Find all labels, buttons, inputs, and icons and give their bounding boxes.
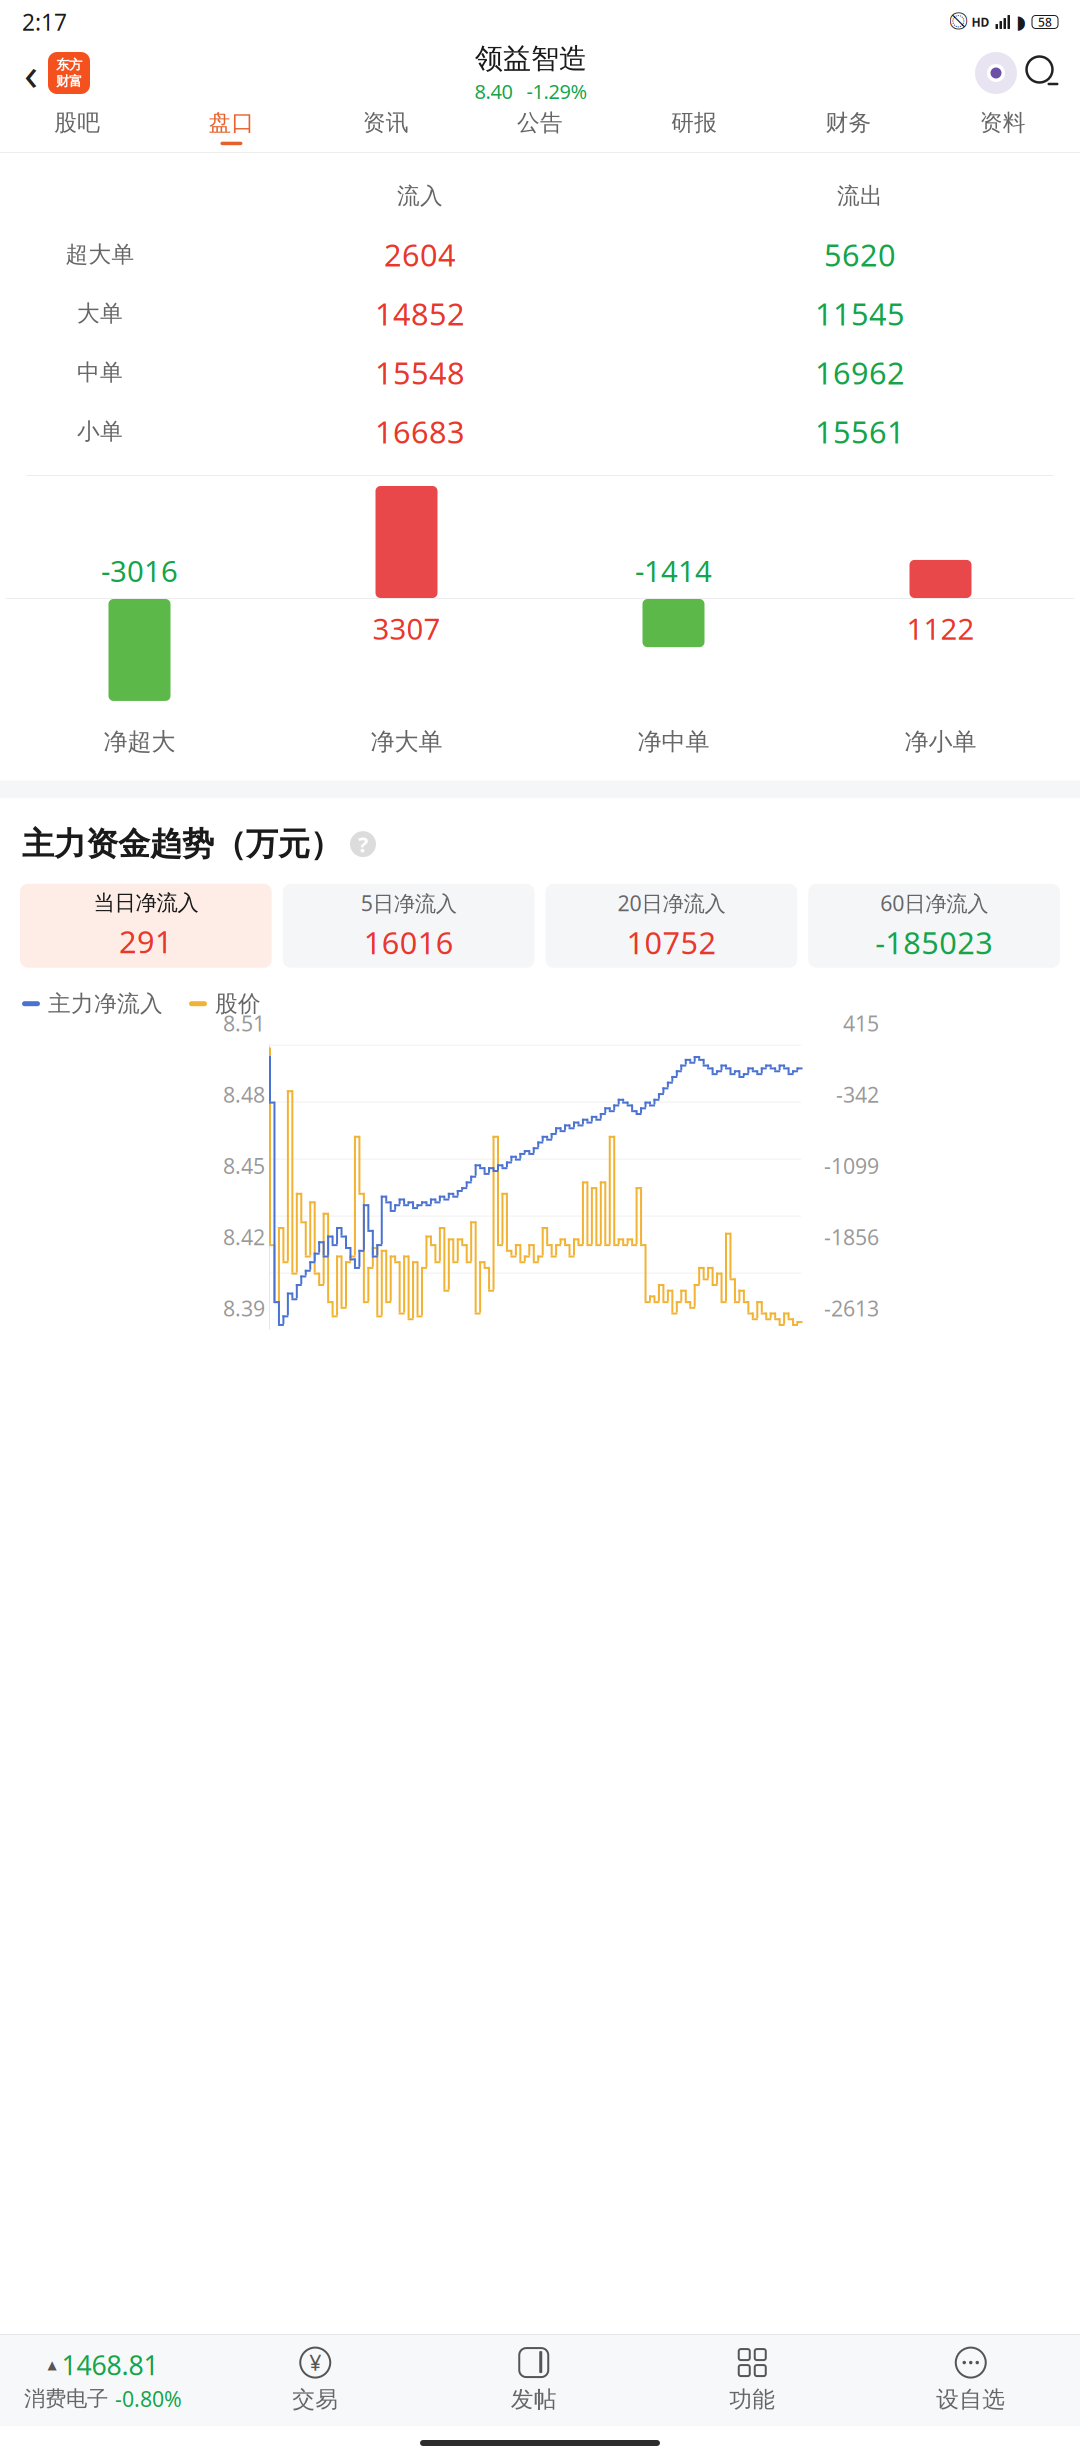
staticText: 交易 bbox=[292, 2386, 338, 2413]
button[interactable]: Search bbox=[1020, 50, 1066, 96]
staticText: -342 bbox=[836, 1080, 879, 1108]
button[interactable]: 东方财富 bbox=[48, 52, 90, 94]
staticText: 2:17 bbox=[22, 7, 67, 37]
staticText: ◗ bbox=[1016, 11, 1026, 33]
button[interactable]: ▲ bbox=[0, 2334, 206, 2426]
staticText: 14852 bbox=[375, 293, 465, 334]
staticText: -0.80% bbox=[115, 2384, 182, 2413]
staticText: 净超大 bbox=[103, 727, 175, 756]
staticText: 公告 bbox=[517, 109, 563, 137]
staticText: 16016 bbox=[364, 922, 454, 963]
staticText: 流入 bbox=[397, 182, 443, 210]
staticText: 415 bbox=[843, 1009, 879, 1037]
staticText: ▲ bbox=[47, 2358, 56, 2372]
staticText: 小单 bbox=[77, 418, 123, 445]
staticText: 20日净流入 bbox=[617, 889, 725, 917]
staticText: 流出 bbox=[837, 182, 883, 210]
staticText: 10752 bbox=[626, 922, 716, 963]
button[interactable]: 公告 bbox=[463, 102, 617, 152]
staticText: 财务 bbox=[826, 109, 872, 137]
staticText: 8.45 bbox=[223, 1151, 265, 1180]
staticText: 主力资金趋势（万元） bbox=[22, 824, 342, 864]
staticText: 5620 bbox=[824, 234, 896, 275]
button[interactable]: 资料 bbox=[926, 102, 1080, 152]
staticText: 5日净流入 bbox=[361, 889, 457, 917]
button[interactable]: 财务 bbox=[771, 102, 926, 152]
button[interactable]: 当日净流入 bbox=[20, 884, 272, 968]
button[interactable]: AI 助手 bbox=[972, 49, 1020, 97]
button[interactable]: 盘口 bbox=[154, 102, 309, 152]
staticText: -3016 bbox=[101, 551, 178, 590]
staticText: HD bbox=[971, 14, 989, 30]
staticText: 东方 bbox=[56, 57, 82, 73]
staticText: 当日净流入 bbox=[93, 890, 198, 916]
staticText: 研报 bbox=[671, 109, 717, 137]
button[interactable]: 股吧 bbox=[0, 102, 154, 152]
staticText: 股吧 bbox=[54, 109, 100, 137]
staticText: -2613 bbox=[824, 1294, 879, 1322]
button[interactable]: 5日净流入 bbox=[283, 884, 535, 968]
button[interactable]: ¥ bbox=[206, 2334, 424, 2426]
staticText: 16683 bbox=[375, 411, 465, 452]
staticText: 291 bbox=[119, 921, 173, 962]
staticText: 1468.81 bbox=[61, 2347, 158, 2382]
staticText: 净大单 bbox=[370, 727, 442, 756]
staticText: 15548 bbox=[375, 352, 465, 393]
staticText: 净中单 bbox=[637, 727, 709, 756]
staticText: ‹ bbox=[24, 43, 38, 103]
staticText: 11545 bbox=[815, 293, 905, 334]
staticText: -1.29% bbox=[526, 78, 587, 104]
staticText: 8.42 bbox=[223, 1223, 265, 1251]
staticText: 发帖 bbox=[511, 2386, 557, 2413]
staticText: 58 bbox=[1038, 14, 1052, 30]
staticText: 设自选 bbox=[936, 2386, 1005, 2413]
staticText: 股价 bbox=[215, 990, 261, 1018]
staticText: 8.51 bbox=[223, 1009, 265, 1037]
button[interactable]: 研报 bbox=[617, 102, 771, 152]
staticText: 领益智造 bbox=[475, 41, 587, 76]
staticText: 资讯 bbox=[363, 109, 409, 137]
staticText: 15561 bbox=[815, 411, 905, 452]
staticText: 主力净流入 bbox=[48, 990, 163, 1018]
staticText: 8.39 bbox=[223, 1294, 265, 1322]
staticText: 资料 bbox=[980, 109, 1026, 137]
button[interactable]: 发帖 bbox=[424, 2334, 643, 2426]
staticText: 盘口 bbox=[208, 109, 254, 137]
button[interactable]: 功能 bbox=[643, 2334, 861, 2426]
button[interactable]: Back bbox=[14, 50, 48, 96]
staticText: 超大单 bbox=[65, 241, 134, 268]
staticText: 3307 bbox=[372, 609, 440, 648]
staticText: -1099 bbox=[824, 1151, 879, 1180]
staticText: -185023 bbox=[875, 922, 993, 963]
staticText: -1856 bbox=[824, 1223, 879, 1251]
staticText: 净小单 bbox=[904, 727, 976, 756]
staticText: 2604 bbox=[384, 234, 456, 275]
staticText: 大单 bbox=[77, 300, 123, 327]
button[interactable]: 60日净流入 bbox=[808, 884, 1060, 968]
staticText: ? bbox=[358, 830, 368, 858]
button[interactable]: 设自选 bbox=[861, 2334, 1080, 2426]
staticText: 1122 bbox=[906, 609, 974, 648]
staticText: ⃠ bbox=[951, 13, 965, 30]
staticText: -1414 bbox=[635, 551, 712, 590]
button[interactable]: 资讯 bbox=[309, 102, 463, 152]
staticText: 8.40 bbox=[474, 78, 512, 104]
staticText: 中单 bbox=[77, 359, 123, 386]
staticText: 16962 bbox=[815, 352, 905, 393]
staticText: 消费电子 bbox=[24, 2386, 108, 2412]
button[interactable]: 20日净流入 bbox=[545, 884, 797, 968]
staticText: 60日净流入 bbox=[880, 889, 988, 917]
staticText: 功能 bbox=[729, 2386, 775, 2413]
staticText: 财富 bbox=[56, 73, 82, 89]
staticText: ¥ bbox=[309, 2348, 321, 2377]
button[interactable]: 说明 bbox=[350, 830, 376, 858]
staticText: 8.48 bbox=[223, 1080, 265, 1108]
